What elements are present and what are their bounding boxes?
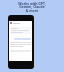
button[interactable] [10, 27, 31, 34]
staticText: Works with GPT, Gemini, Claude & more [18, 1, 46, 13]
